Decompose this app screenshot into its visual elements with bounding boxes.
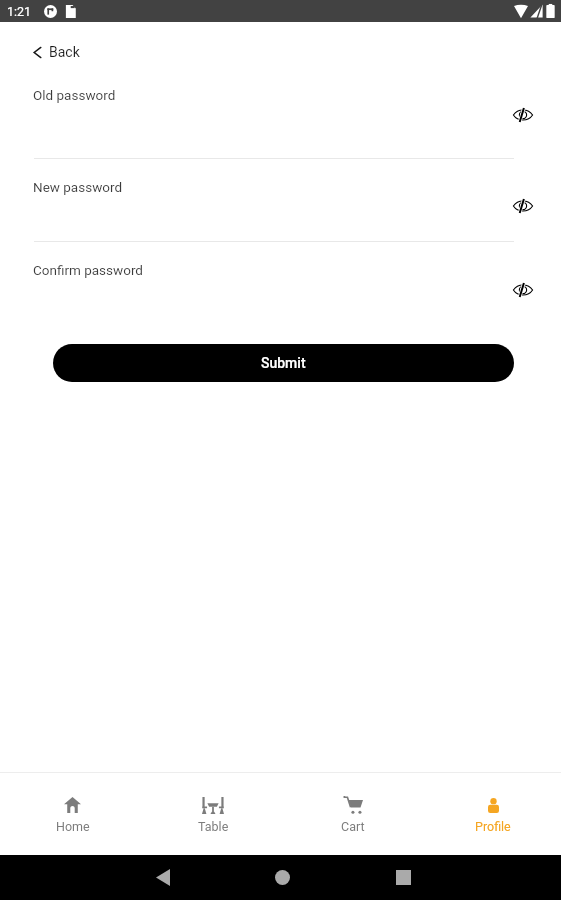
button[interactable]: Toggle password visibility bbox=[509, 192, 537, 220]
staticText: Home bbox=[56, 819, 90, 834]
staticText: 1:21 bbox=[7, 4, 32, 19]
button[interactable]: Table bbox=[141, 773, 281, 855]
button[interactable]: Toggle password visibility bbox=[509, 101, 537, 129]
button[interactable]: Back bbox=[0, 40, 561, 64]
staticText: New password bbox=[33, 179, 123, 195]
button[interactable]: Submit bbox=[53, 344, 514, 382]
button[interactable]: Toggle password visibility bbox=[509, 276, 537, 304]
staticText: Submit bbox=[261, 355, 306, 371]
staticText: Old password bbox=[33, 87, 116, 103]
button[interactable]: Back bbox=[141, 855, 185, 900]
staticText: Profile bbox=[475, 819, 511, 834]
button[interactable]: Home bbox=[0, 773, 141, 855]
button[interactable]: Home bbox=[260, 855, 304, 900]
button[interactable]: Cart bbox=[281, 773, 421, 855]
staticText: Confirm password bbox=[33, 262, 143, 278]
button[interactable]: Recent apps bbox=[381, 855, 425, 900]
staticText: Back bbox=[49, 44, 80, 60]
staticText: Cart bbox=[341, 819, 365, 834]
staticText: Table bbox=[198, 819, 229, 834]
button[interactable]: Profile bbox=[421, 773, 561, 855]
